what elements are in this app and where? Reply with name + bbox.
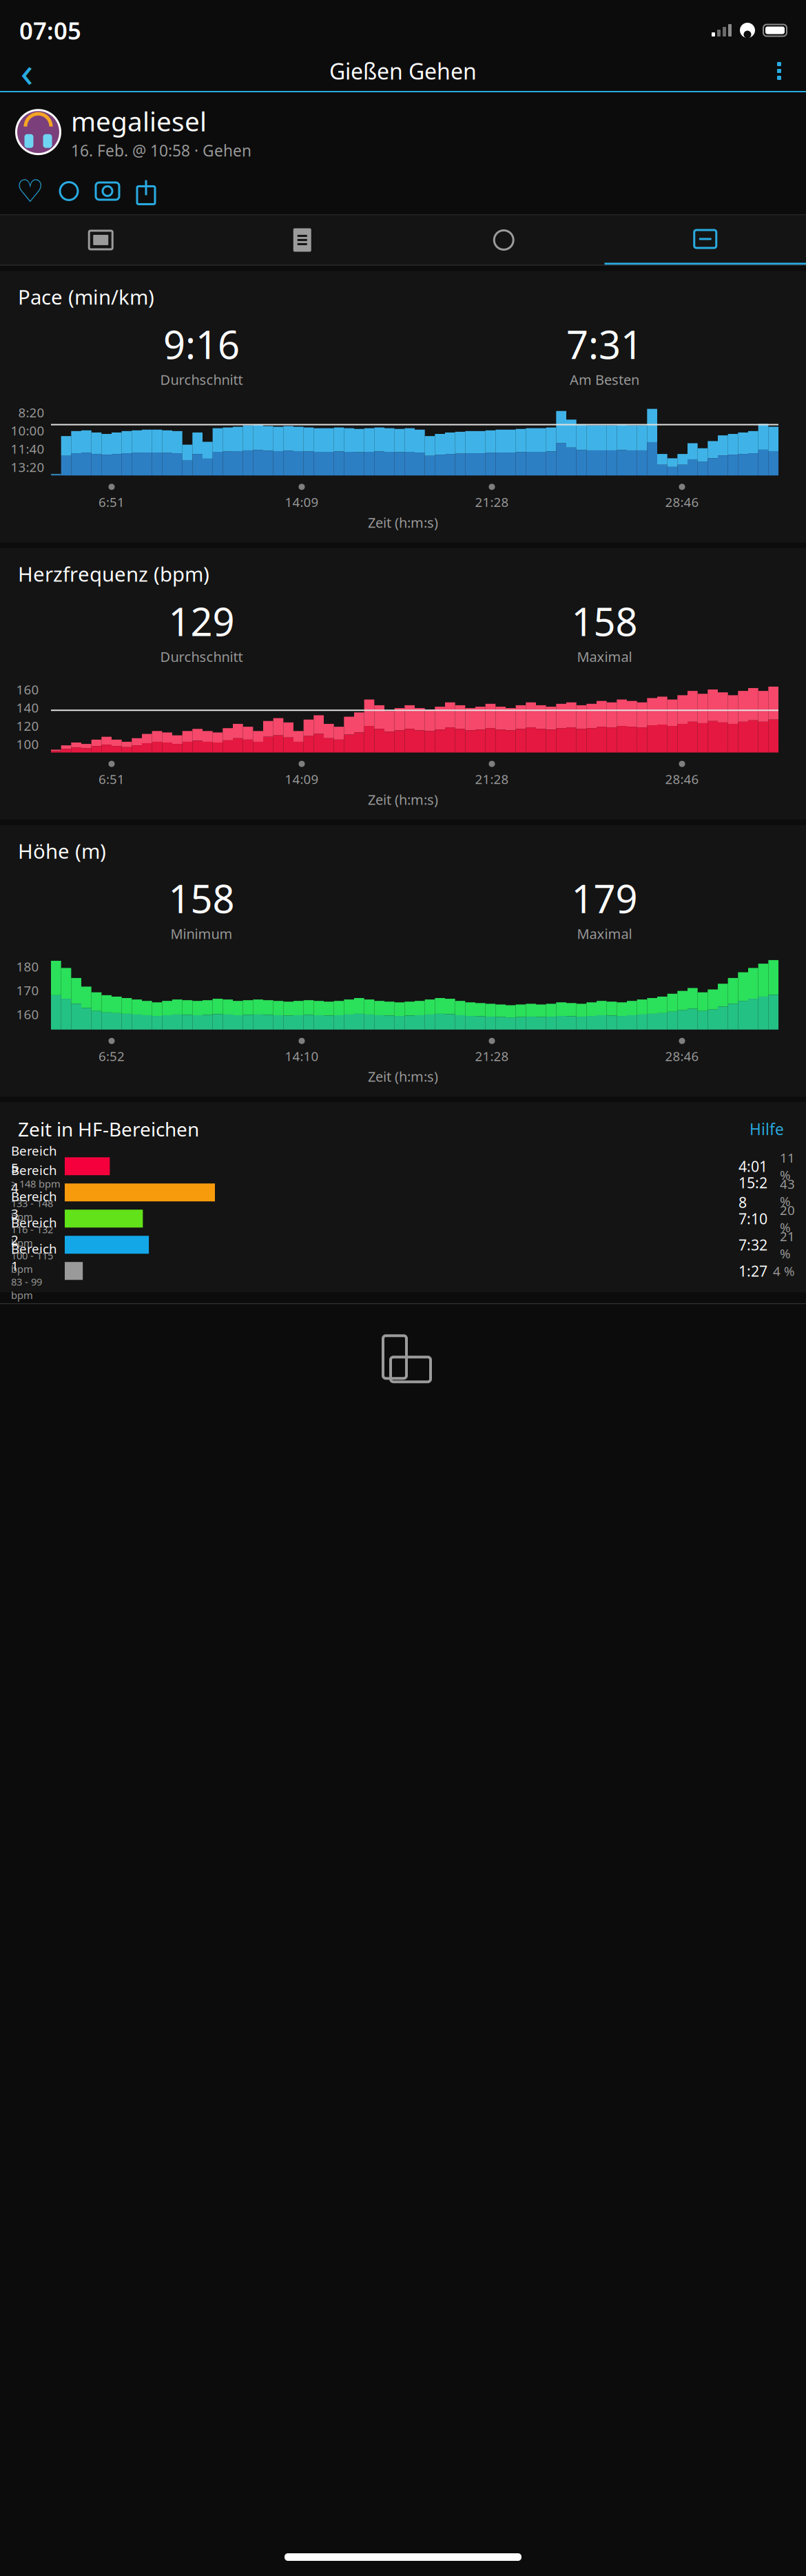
staticText: 21:28	[475, 1047, 509, 1065]
staticText: 180	[16, 958, 39, 975]
staticText: Maximal	[577, 924, 632, 943]
staticText: 21:28	[475, 493, 509, 510]
staticText: 116 - 132 bpm	[11, 1223, 53, 1249]
staticText: Gießen Gehen	[329, 56, 477, 86]
staticText: Bereich 2	[11, 1214, 57, 1248]
button[interactable]: Weitere Optionen	[761, 52, 798, 90]
staticText: Herzfrequenz (bpm)	[18, 560, 209, 587]
staticText: 28:46	[665, 770, 699, 788]
staticText: megaliesel	[71, 103, 207, 139]
staticText: Am Besten	[570, 370, 639, 389]
staticText: Zeit (h:m:s)	[368, 790, 438, 809]
button[interactable]: Hilfe	[745, 1114, 788, 1143]
staticText: Durchschnitt	[160, 647, 243, 666]
staticText: 7:10	[738, 1209, 767, 1228]
staticText: Minimum	[170, 924, 232, 943]
staticText: 83 - 99 bpm	[11, 1275, 42, 1302]
staticText: 21 %	[780, 1228, 795, 1262]
button[interactable]: Gefällt mir	[11, 172, 50, 210]
staticText: Bereich 4	[11, 1162, 57, 1196]
staticText: 179	[571, 873, 638, 924]
staticText: Höhe (m)	[18, 837, 106, 864]
staticText: Bereich 1	[11, 1240, 57, 1274]
staticText: 100 - 115 bpm	[11, 1249, 53, 1276]
staticText: 10:00	[11, 422, 44, 439]
staticText: 07:05	[19, 14, 81, 46]
staticText: ‹	[20, 43, 33, 99]
staticText: 6:52	[99, 1047, 125, 1065]
staticText: 6:51	[99, 493, 125, 510]
staticText: > 148 bpm	[11, 1177, 61, 1190]
staticText: 21:28	[475, 770, 509, 788]
staticText: Bereich 3	[11, 1188, 57, 1222]
staticText: 120	[16, 717, 39, 734]
button[interactable]: Zurück	[8, 52, 45, 90]
staticText: 160	[16, 1006, 39, 1023]
button[interactable]: Details	[201, 215, 403, 265]
staticText: ♡	[16, 173, 44, 209]
button[interactable]: Foto hinzufügen	[88, 172, 127, 210]
staticText: Bereich 5	[11, 1142, 57, 1176]
staticText: 140	[16, 699, 39, 716]
staticText: 15:28	[738, 1173, 767, 1212]
staticText: 14:10	[285, 1047, 319, 1065]
staticText: 4 %	[773, 1262, 795, 1279]
button[interactable]: Teilen	[127, 172, 165, 210]
staticText: Durchschnitt	[160, 370, 243, 389]
button[interactable]: Karte	[0, 215, 201, 265]
staticText: 160	[16, 681, 39, 698]
staticText: 158	[571, 596, 638, 647]
staticText: 14:09	[285, 493, 319, 510]
staticText: 11 %	[780, 1149, 795, 1183]
staticText: 28:46	[665, 493, 699, 510]
staticText: Pace (min/km)	[18, 283, 154, 310]
staticText: 129	[168, 596, 235, 647]
staticText: Maximal	[577, 647, 632, 666]
staticText: 13:20	[11, 458, 44, 475]
staticText: 16. Feb. @ 10:58 · Gehen	[71, 140, 251, 161]
staticText: 133 - 148 bpm	[11, 1196, 53, 1223]
button[interactable]: Gerät drehen	[362, 1327, 444, 1394]
staticText: 20 %	[780, 1201, 795, 1236]
staticText: Hilfe	[750, 1119, 784, 1139]
button[interactable]: Kommentieren	[50, 172, 88, 210]
staticText: 170	[16, 982, 39, 999]
staticText: Zeit (h:m:s)	[368, 513, 438, 532]
button[interactable]: Runden	[403, 215, 604, 265]
staticText: 9:16	[163, 318, 240, 370]
staticText: 8:20	[18, 404, 44, 421]
staticText: 28:46	[665, 1047, 699, 1065]
staticText: 7:32	[738, 1235, 767, 1255]
button[interactable]: Diagramme	[604, 215, 806, 265]
staticText: 14:09	[285, 770, 319, 788]
staticText: Zeit (h:m:s)	[368, 1067, 438, 1086]
staticText: 7:31	[566, 318, 643, 370]
staticText: Zeit in HF-Bereichen	[18, 1116, 199, 1142]
staticText: 4:01	[738, 1157, 767, 1176]
staticText: 100	[16, 735, 39, 753]
staticText: 158	[168, 873, 235, 924]
staticText: 6:51	[99, 770, 125, 788]
staticText: 43 %	[780, 1175, 795, 1209]
staticText: 1:27	[738, 1261, 767, 1281]
staticText: 11:40	[11, 440, 44, 457]
